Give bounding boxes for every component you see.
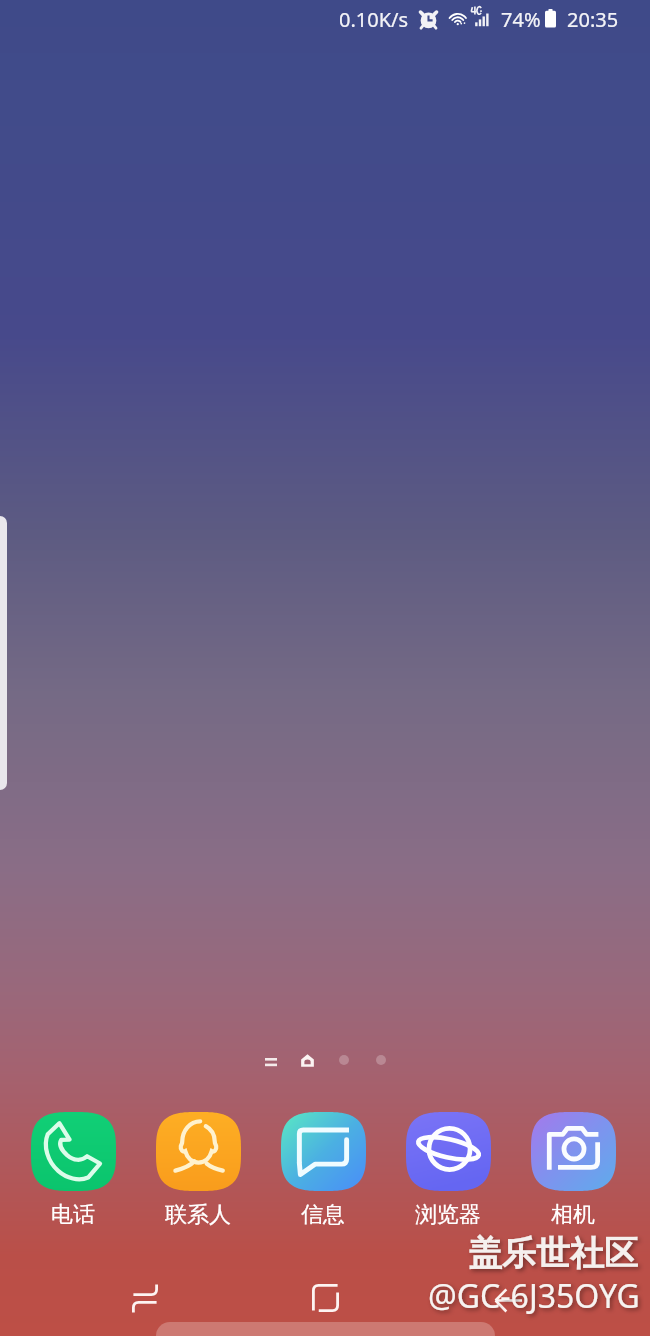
- button[interactable]: Recent apps: [116, 1270, 174, 1328]
- staticText: 浏览器: [415, 1201, 481, 1229]
- button[interactable]: 电话: [17, 1112, 129, 1229]
- staticText: 盖乐世社区: [468, 1232, 638, 1275]
- button[interactable]: Home page: [294, 1047, 320, 1073]
- button[interactable]: 联系人: [142, 1112, 254, 1229]
- button[interactable]: Home: [297, 1270, 355, 1328]
- button[interactable]: 浏览器: [392, 1112, 504, 1229]
- button[interactable]: 信息: [267, 1112, 379, 1229]
- staticText: 20:35: [567, 6, 619, 33]
- staticText: 联系人: [165, 1201, 231, 1229]
- staticText: 0.10K/s: [339, 6, 409, 33]
- staticText: 74%: [501, 6, 541, 33]
- button[interactable]: Back: [477, 1270, 535, 1328]
- button[interactable]: Edge panel handle: [0, 516, 7, 790]
- button[interactable]: App drawer: [258, 1050, 284, 1076]
- button[interactable]: 相机: [517, 1112, 629, 1229]
- staticText: 电话: [51, 1201, 95, 1229]
- staticText: 信息: [301, 1201, 345, 1229]
- staticText: @GC-6J35OYG: [428, 1274, 640, 1318]
- staticText: 相机: [551, 1201, 595, 1229]
- button[interactable]: Page 3: [368, 1047, 393, 1072]
- button[interactable]: Page 2: [331, 1047, 356, 1072]
